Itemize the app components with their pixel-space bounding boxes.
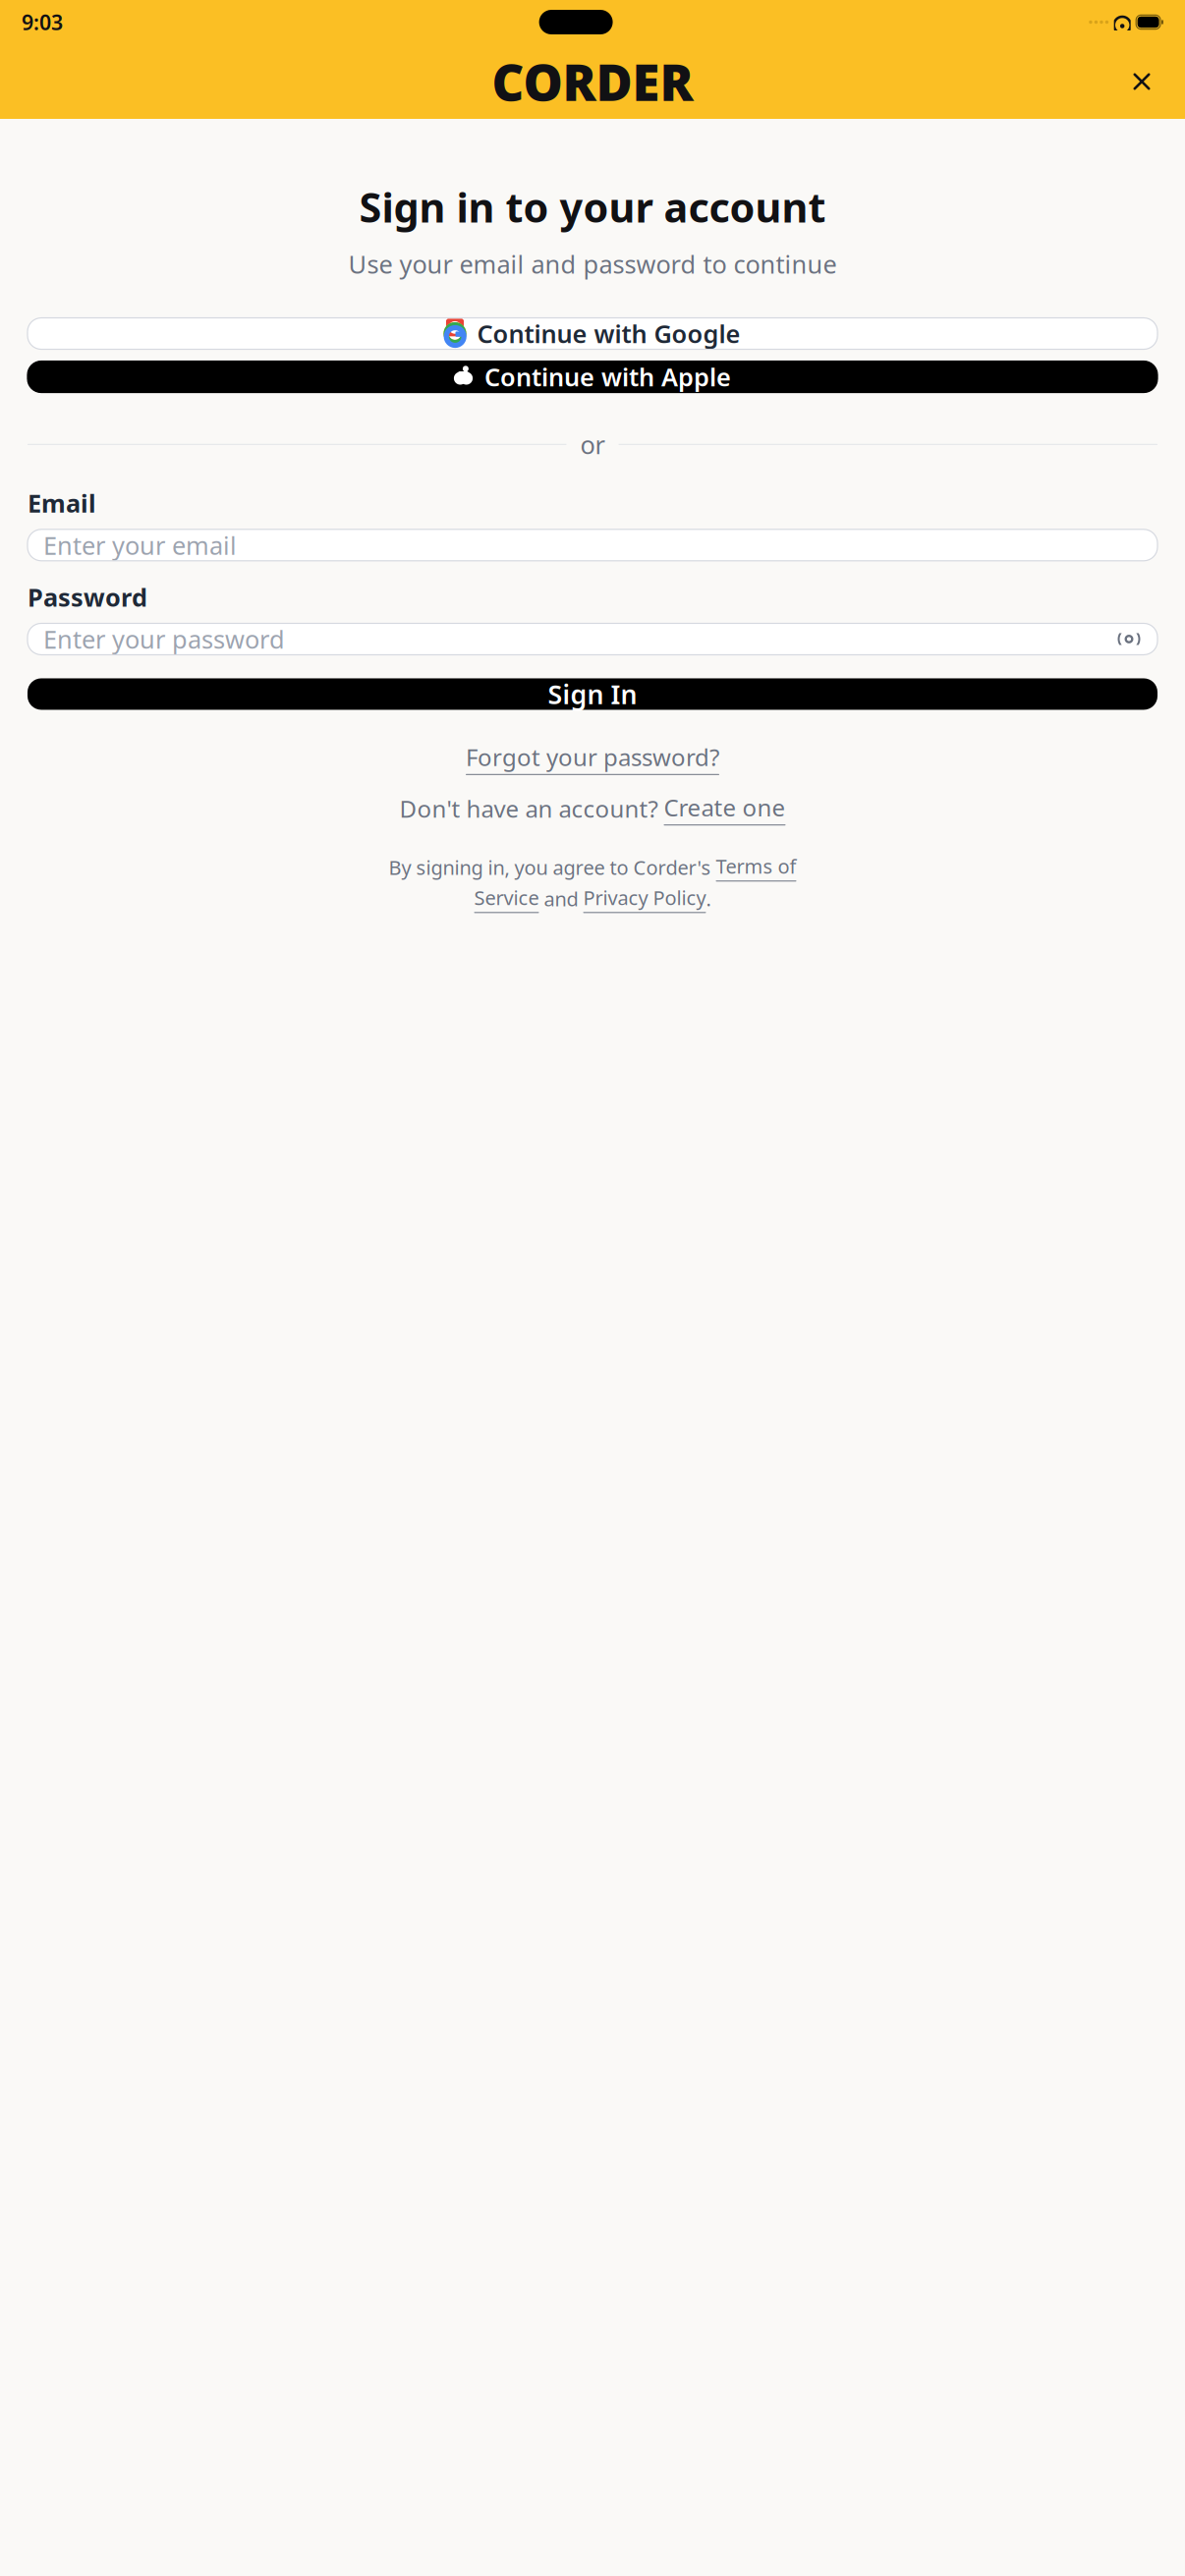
staticText: By signing in, you agree to Corder's [389, 854, 716, 880]
staticText: 9:03 [22, 8, 63, 36]
staticText: Password [28, 580, 147, 613]
staticText: Service [474, 885, 539, 911]
staticText: Enter your password [43, 622, 285, 655]
button[interactable]: Create one [664, 792, 786, 825]
staticText: . [706, 886, 711, 912]
staticText: Forgot your password? [466, 741, 719, 773]
staticText: Don't have an account? [399, 793, 658, 824]
button[interactable]: Close [1120, 60, 1163, 103]
staticText: Use your email and password to continue [348, 247, 837, 280]
button[interactable]: Sign In [28, 678, 1157, 710]
button[interactable]: Continue with Apple [28, 361, 1157, 392]
staticText: and [539, 886, 583, 912]
staticText: Enter your email [43, 529, 237, 562]
staticText: Continue with Apple [484, 360, 731, 393]
button[interactable]: Privacy Policy [583, 885, 706, 913]
staticText: Create one [664, 792, 786, 823]
button[interactable]: Forgot your password? [466, 741, 719, 775]
staticText: Privacy Policy [583, 885, 706, 911]
button[interactable]: Service [474, 885, 539, 913]
staticText: CORDER [492, 49, 693, 115]
staticText: Sign In [548, 677, 637, 711]
button[interactable]: Show password [1112, 624, 1146, 654]
button[interactable]: Continue with Google [28, 318, 1157, 349]
staticText: Sign in to your account [359, 180, 826, 234]
staticText: Terms of [716, 853, 796, 879]
staticText: Email [28, 487, 96, 520]
staticText: or [580, 428, 605, 461]
button[interactable]: Terms of [716, 853, 796, 882]
staticText: Continue with Google [477, 317, 740, 350]
